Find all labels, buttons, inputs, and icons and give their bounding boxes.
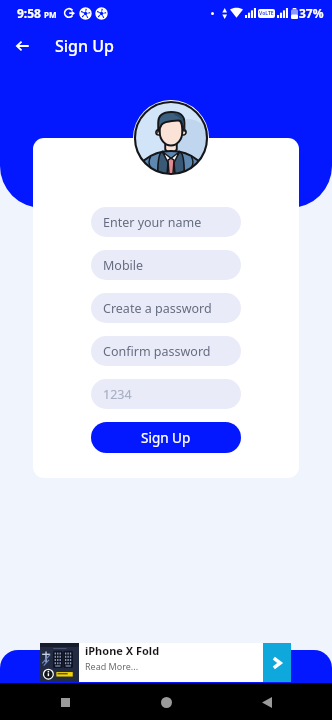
staticText: 9:58: [17, 5, 41, 21]
button[interactable]: Confirm password: [91, 336, 241, 366]
staticText: Read More...: [85, 660, 139, 672]
button[interactable]: Create a password: [91, 293, 241, 323]
staticText: Enter your name: [103, 214, 202, 231]
staticText: Confirm password: [103, 343, 211, 360]
button[interactable]: Back: [254, 689, 280, 715]
button[interactable]: Recents: [52, 689, 78, 715]
staticText: PM: [44, 9, 57, 20]
staticText: iPhone X Fold: [85, 643, 160, 658]
button[interactable]: iPhone X Fold: [40, 643, 291, 682]
staticText: 37%: [299, 5, 324, 21]
staticText: Sign Up: [141, 429, 191, 447]
button[interactable]: Open ad: [263, 643, 291, 682]
button[interactable]: 1234: [91, 379, 241, 409]
staticText: Mobile: [103, 257, 144, 274]
button[interactable]: Home: [153, 689, 179, 715]
button[interactable]: Back: [9, 32, 37, 60]
staticText: 1234: [103, 386, 132, 403]
button[interactable]: Sign Up: [91, 422, 241, 453]
button[interactable]: Mobile: [91, 250, 241, 280]
button[interactable]: Enter your name: [91, 207, 241, 237]
staticText: VoLTE: [259, 10, 274, 17]
staticText: Sign Up: [55, 35, 114, 57]
staticText: Create a password: [103, 300, 212, 317]
